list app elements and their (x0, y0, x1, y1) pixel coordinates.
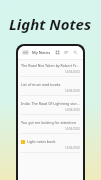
staticText: The Road Not Taken by Robert Frost (21, 63, 80, 68)
staticText: Light notes book (27, 139, 56, 144)
button[interactable]: India: The Road Of Lightning stories (18, 98, 83, 117)
button[interactable]: Sort (62, 48, 71, 57)
staticText: 14/04/2023 (65, 70, 80, 74)
staticText: Light Notes (9, 14, 92, 34)
button[interactable]: Light notes book (18, 136, 83, 155)
button[interactable]: You got me looking for attention (18, 117, 83, 136)
button[interactable]: List of must read books (18, 79, 83, 98)
staticText: 14/04/2023 (65, 108, 80, 112)
button[interactable]: Search (71, 48, 80, 57)
button[interactable]: Grid view (53, 48, 62, 57)
button[interactable]: Menu (21, 48, 30, 57)
staticText: 14/04/2023 (65, 146, 80, 150)
staticText: You got me looking for attention (21, 120, 76, 125)
staticText: List of must read books (21, 82, 61, 87)
button[interactable]: The Road Not Taken by Robert Frost (18, 60, 83, 79)
staticText: India: The Road Of Lightning stories (21, 101, 80, 106)
staticText: 14/04/2023 (65, 127, 80, 131)
staticText: My Notes (32, 50, 51, 55)
staticText: 14/04/2023 (65, 89, 80, 93)
